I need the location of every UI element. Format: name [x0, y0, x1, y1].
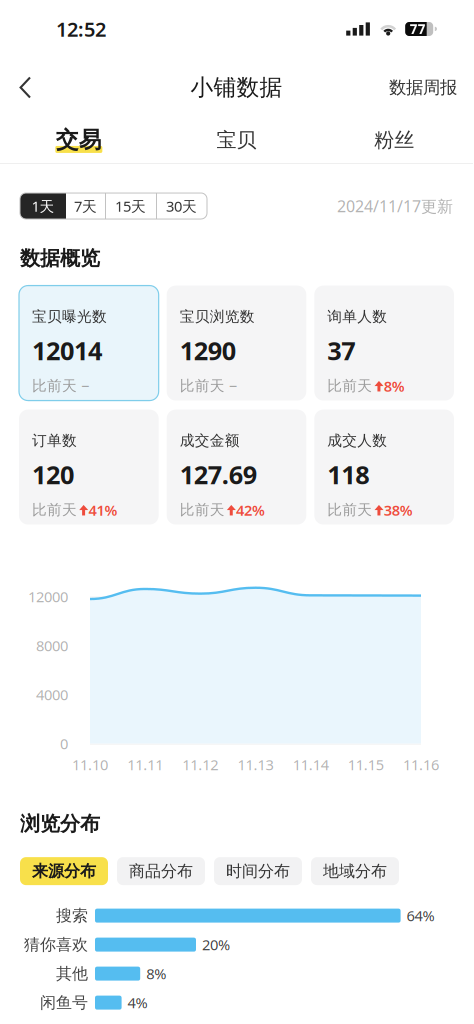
staticText: 127.69 [180, 458, 257, 491]
staticText: 118 [327, 458, 369, 491]
staticText: 比前天 [327, 501, 372, 519]
staticText: 小铺数据 [190, 74, 282, 101]
staticText: 11.12 [182, 755, 218, 774]
button[interactable]: 时间分布 [214, 857, 302, 885]
staticText: 120 [32, 458, 74, 491]
staticText: 64% [407, 906, 435, 925]
staticText: 42% [236, 500, 265, 520]
staticText: 交易 [56, 126, 102, 154]
staticText: 0 [60, 734, 68, 753]
staticText: 成交金额 [180, 432, 240, 450]
button[interactable]: 宝贝浏览数 [167, 286, 306, 401]
staticText: 12:52 [56, 16, 106, 42]
staticText: 4000 [36, 685, 68, 704]
staticText: 商品分布 [129, 861, 193, 881]
staticText: 宝贝浏览数 [180, 308, 255, 326]
staticText: 77 [410, 20, 426, 38]
button[interactable]: 宝贝 [158, 120, 315, 160]
staticText: 浏览分布 [20, 812, 100, 836]
staticText: 8000 [36, 636, 68, 655]
button[interactable]: 7天 [66, 193, 105, 219]
staticText: 2024/11/17更新 [337, 195, 453, 217]
button[interactable]: 地域分布 [311, 857, 399, 885]
staticText: 比前天 [180, 501, 225, 519]
staticText: 38% [384, 500, 413, 520]
staticText: 成交人数 [327, 432, 387, 450]
staticText: 数据概览 [20, 246, 100, 271]
button[interactable]: 成交金额 [167, 410, 306, 525]
staticText: 比前天 [180, 377, 225, 395]
button[interactable]: 返回 [5, 66, 46, 109]
staticText: 地域分布 [323, 861, 387, 881]
staticText: 37 [327, 334, 355, 367]
staticText: 4% [128, 993, 148, 1012]
staticText: 1天 [31, 196, 54, 216]
staticText: 订单数 [32, 432, 77, 450]
staticText: 粉丝 [374, 128, 414, 152]
staticText: 8% [146, 964, 166, 983]
staticText: 搜索 [56, 906, 88, 925]
staticText: 来源分布 [32, 861, 96, 881]
staticText: 41% [88, 500, 117, 520]
button[interactable]: 30天 [156, 193, 207, 219]
staticText: − [225, 376, 237, 396]
staticText: 其他 [56, 964, 88, 983]
staticText: 猜你喜欢 [24, 935, 88, 954]
button[interactable]: 15天 [105, 193, 156, 219]
staticText: 比前天 [32, 501, 77, 519]
button[interactable]: 来源分布 [20, 857, 108, 885]
staticText: 数据周报 [389, 77, 457, 98]
staticText: 11.11 [127, 755, 163, 774]
button[interactable]: 询单人数 [314, 286, 454, 401]
button[interactable]: 商品分布 [117, 857, 205, 885]
staticText: 11.10 [72, 755, 108, 774]
button[interactable]: 数据周报 [375, 67, 468, 108]
staticText: 12000 [28, 587, 68, 606]
button[interactable]: 宝贝曝光数 [19, 286, 159, 401]
staticText: 7天 [74, 196, 97, 216]
staticText: 11.13 [237, 755, 273, 774]
staticText: 11.15 [348, 755, 384, 774]
staticText: 时间分布 [226, 861, 290, 881]
button[interactable]: 订单数 [19, 410, 159, 525]
staticText: 宝贝曝光数 [32, 308, 107, 326]
staticText: 11.14 [293, 755, 329, 774]
staticText: 闲鱼号 [40, 993, 88, 1012]
button[interactable]: 交易 [0, 118, 158, 162]
staticText: 询单人数 [327, 308, 387, 326]
staticText: 比前天 [32, 377, 77, 395]
staticText: 20% [202, 935, 230, 954]
staticText: − [77, 376, 89, 396]
staticText: 比前天 [327, 377, 372, 395]
staticText: 1290 [180, 334, 236, 367]
staticText: 15天 [115, 196, 146, 216]
button[interactable]: 粉丝 [315, 120, 473, 160]
staticText: 30天 [166, 196, 197, 216]
button[interactable]: 成交人数 [314, 410, 454, 525]
staticText: 11.16 [403, 755, 439, 774]
button[interactable]: 1天 [20, 193, 66, 219]
staticText: 8% [384, 376, 405, 396]
staticText: 宝贝 [216, 128, 256, 152]
staticText: 12014 [32, 334, 102, 367]
